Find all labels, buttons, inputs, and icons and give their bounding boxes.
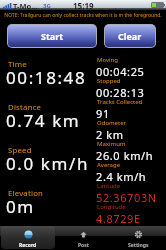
staticText: Tracks Collected	[97, 98, 143, 106]
staticText: NOTE: Trailguru can only collect tracks …	[4, 12, 162, 19]
staticText: 52.36703N	[96, 190, 157, 205]
staticText: 0m	[6, 195, 35, 218]
staticText: Latitude	[97, 182, 121, 190]
staticText: Post	[78, 242, 89, 249]
staticText: 0.74 km	[6, 109, 81, 132]
button[interactable]: Record	[0, 226, 56, 250]
staticText: 15:19	[73, 0, 94, 10]
staticText: 4.8729E	[96, 211, 141, 226]
staticText: Elevation	[8, 188, 44, 199]
staticText: 2 km	[96, 127, 124, 142]
staticText: Odometer	[97, 119, 127, 127]
button[interactable]: Start	[8, 25, 96, 47]
staticText: Clear	[118, 30, 142, 42]
staticText: T-Mo...	[13, 1, 38, 11]
staticText: Moving	[97, 56, 118, 64]
staticText: Settings	[128, 242, 149, 249]
staticText: 00:18:48	[6, 66, 87, 89]
button[interactable]: Post	[56, 226, 111, 250]
button[interactable]: Settings	[111, 226, 166, 250]
button[interactable]: Clear	[105, 25, 155, 47]
staticText: Average	[97, 161, 121, 169]
staticText: 91	[96, 106, 110, 121]
staticText: Longitude	[97, 203, 126, 211]
staticText: 00:28:13	[96, 85, 145, 100]
staticText: Start	[41, 30, 64, 42]
staticText: Distance	[8, 102, 42, 113]
staticText: Time	[8, 59, 27, 70]
staticText: 00:04:25	[96, 64, 145, 79]
staticText: Maximum	[97, 140, 126, 148]
staticText: Speed	[8, 145, 32, 156]
staticText: 2.4 km/h	[96, 169, 147, 184]
staticText: Record	[19, 242, 37, 249]
staticText: 26.0 km/h	[96, 148, 154, 163]
staticText: Stopped	[97, 77, 121, 85]
staticText: 0.0 km/h	[6, 152, 90, 175]
staticText: 3G	[43, 2, 51, 10]
